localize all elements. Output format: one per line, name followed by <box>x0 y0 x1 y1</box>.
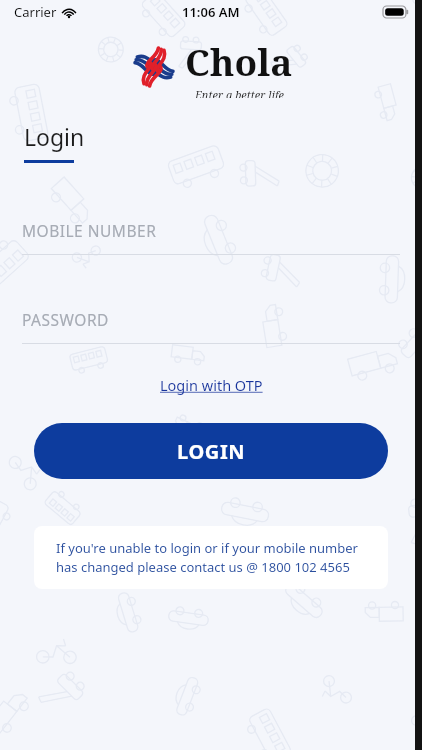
staticText: If you're unable to login or if your mob… <box>56 539 366 576</box>
staticText: Carrier <box>14 3 57 21</box>
staticText: Enter a better life <box>195 87 284 98</box>
staticText: LOGIN <box>177 438 246 465</box>
button[interactable]: MOBILE NUMBER <box>0 220 422 255</box>
button[interactable]: PASSWORD <box>0 309 422 344</box>
button[interactable]: LOGIN <box>34 423 388 479</box>
staticText: PASSWORD <box>22 309 109 330</box>
button[interactable]: Login <box>24 121 93 163</box>
staticText: Login with OTP <box>160 375 263 395</box>
staticText: Chola <box>185 36 293 86</box>
staticText: Login <box>24 121 85 152</box>
button[interactable]: If you're unable to login or if your mob… <box>34 526 388 589</box>
button[interactable]: Login with OTP <box>150 370 273 400</box>
staticText: 11:06 AM <box>182 3 240 21</box>
staticText: MOBILE NUMBER <box>22 220 157 241</box>
other: Chola logo <box>130 43 178 91</box>
